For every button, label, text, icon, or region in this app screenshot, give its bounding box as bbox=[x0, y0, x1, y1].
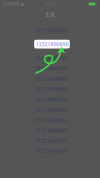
button[interactable]: 13321890890 bbox=[0, 146, 100, 156]
staticText: 13321890890 bbox=[34, 116, 67, 124]
button[interactable]: 13321890890 bbox=[0, 125, 100, 135]
button[interactable]: 13321890890 bbox=[0, 53, 100, 63]
staticText: 13321890890 bbox=[34, 147, 67, 155]
button[interactable]: 13321890890 bbox=[0, 105, 100, 115]
staticText: 13321890890 bbox=[34, 137, 67, 144]
staticText: 13321890890 bbox=[34, 85, 67, 93]
staticText: 13321890890 bbox=[34, 75, 67, 82]
staticText: 13321890890 bbox=[34, 55, 67, 62]
button[interactable]: 13321890890 bbox=[0, 74, 100, 84]
staticText: 16:29 bbox=[45, 1, 54, 7]
staticText: 13321890890 bbox=[36, 41, 69, 48]
button[interactable]: 13321890890 bbox=[0, 136, 100, 146]
staticText: 13321890890 bbox=[34, 65, 67, 72]
staticText: 13321890890 bbox=[34, 127, 67, 134]
staticText: 13321890890 bbox=[34, 27, 67, 34]
staticText: 13321890890 bbox=[34, 96, 67, 103]
button[interactable]: 13321890890 bbox=[0, 115, 100, 125]
button[interactable]: 13321890890 bbox=[0, 84, 100, 94]
button[interactable]: 13321890890 bbox=[0, 63, 100, 74]
staticText: 主页 bbox=[45, 11, 55, 18]
button[interactable]: 13321890890 bbox=[0, 25, 100, 35]
staticText: 13321890890 bbox=[34, 106, 67, 113]
staticText: 中国联通 bbox=[3, 1, 19, 6]
button[interactable]: 13321890890 bbox=[0, 94, 100, 104]
button[interactable]: 13321890890 bbox=[0, 35, 100, 53]
